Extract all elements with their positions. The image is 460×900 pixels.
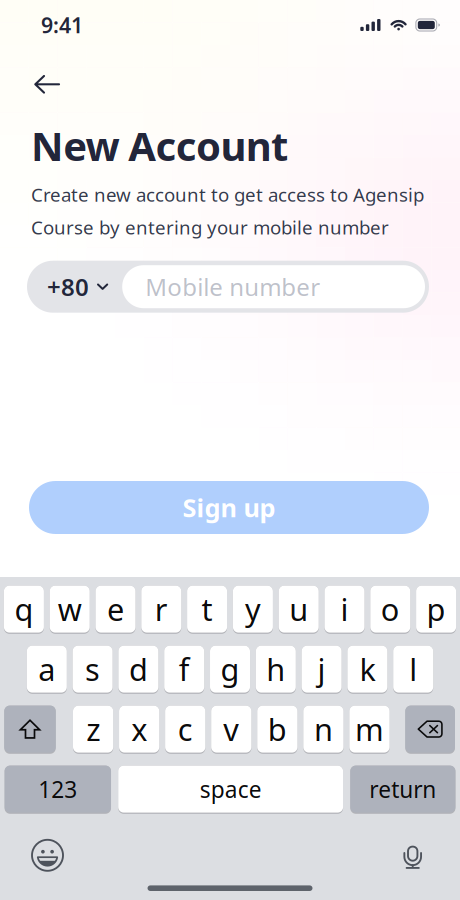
button[interactable]: z [73,706,113,754]
button[interactable]: Delete [405,706,455,754]
button[interactable]: y [233,586,273,634]
button[interactable]: Shift [4,706,56,754]
button[interactable]: g [210,646,250,694]
button[interactable]: k [347,646,387,694]
staticText: Mobile number [145,271,320,303]
staticText: l [409,649,417,689]
staticText: g [220,649,239,689]
button[interactable]: w [50,586,90,634]
staticText: x [131,709,147,749]
button[interactable]: j [302,646,342,694]
button[interactable]: d [118,646,158,694]
staticText: t [202,589,213,629]
button[interactable]: v [211,706,251,754]
button[interactable]: x [119,706,159,754]
staticText: i [340,589,348,629]
staticText: o [381,589,400,629]
staticText: s [85,649,100,689]
staticText: m [355,709,384,749]
staticText: Course by entering your mobile number [31,215,389,240]
button[interactable]: Emoji keyboard [31,839,64,872]
button[interactable]: i [324,586,364,634]
button[interactable]: s [73,646,113,694]
button[interactable]: 123 [5,766,111,814]
button[interactable]: n [303,706,344,754]
button[interactable]: q [4,586,44,634]
button[interactable]: h [256,646,296,694]
button[interactable]: l [393,646,433,694]
staticText: e [107,589,124,629]
staticText: Sign up [182,491,275,524]
staticText: r [155,589,168,629]
button[interactable]: return [350,766,455,814]
button[interactable]: m [349,706,390,754]
staticText: p [427,589,446,629]
button[interactable]: t [187,586,227,634]
staticText: b [268,709,287,749]
staticText: j [318,649,326,689]
staticText: 123 [38,774,77,804]
staticText: v [223,709,239,749]
button[interactable]: f [164,646,204,694]
button[interactable]: u [279,586,319,634]
button[interactable]: +80 [27,261,122,313]
button[interactable]: r [141,586,181,634]
button[interactable]: o [370,586,410,634]
staticText: w [58,589,82,629]
staticText: +80 [47,271,89,303]
button[interactable]: Mobile number [122,265,425,308]
button[interactable]: p [416,586,456,634]
staticText: return [369,774,436,804]
staticText: New Account [31,119,288,172]
staticText: Create new account to get access to Agen… [31,182,424,207]
button[interactable]: c [165,706,205,754]
button[interactable]: b [257,706,297,754]
staticText: f [179,649,190,689]
button[interactable]: Back [25,66,69,103]
button[interactable]: Sign up [29,481,429,534]
staticText: d [129,649,148,689]
button[interactable]: e [95,586,135,634]
staticText: k [359,649,375,689]
button[interactable]: a [27,646,67,694]
button[interactable]: Dictation [403,842,422,869]
staticText: a [38,649,55,689]
staticText: c [178,709,193,749]
staticText: space [200,774,262,804]
staticText: 9:41 [41,11,83,39]
staticText: h [266,649,285,689]
staticText: z [86,709,100,749]
staticText: y [245,589,261,629]
staticText: n [314,709,333,749]
staticText: q [14,589,33,629]
staticText: u [289,589,308,629]
button[interactable]: space [118,766,343,814]
